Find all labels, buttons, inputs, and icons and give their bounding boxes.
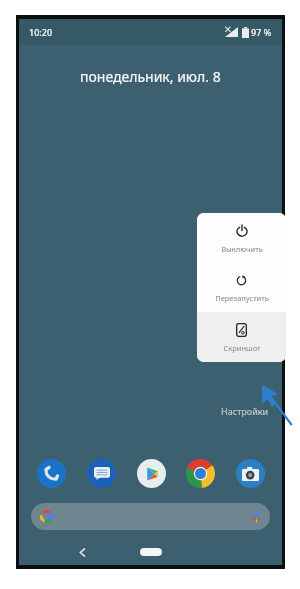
button[interactable]: Restart: [197, 263, 286, 312]
button[interactable]: Messages: [83, 455, 119, 491]
button[interactable]: Phone: [33, 455, 69, 491]
button[interactable]: Back: [71, 541, 93, 563]
staticText: 10:20: [29, 26, 53, 38]
staticText: 97 %: [251, 26, 272, 38]
button[interactable]: Google Search: [31, 503, 270, 530]
other: Power off: [235, 224, 249, 238]
button[interactable]: Camera: [232, 455, 268, 491]
button[interactable]: Screenshot: [197, 312, 286, 362]
staticText: Выключить: [221, 244, 263, 254]
other: Google Search: [40, 510, 53, 523]
button[interactable]: Power off: [197, 213, 286, 263]
other: Pointer: [255, 382, 295, 426]
button[interactable]: Play Store: [133, 455, 169, 491]
other: Screenshot: [236, 323, 247, 337]
other: Restart: [235, 274, 248, 287]
staticText: понедельник, июл. 8: [80, 67, 221, 86]
button[interactable]: понедельник, июл. 8: [19, 67, 282, 86]
staticText: Настройки: [221, 405, 269, 417]
button[interactable]: Настройки: [217, 403, 273, 419]
other: Voice search: [252, 510, 261, 523]
button[interactable]: Home: [134, 544, 168, 560]
staticText: Скриншот: [223, 343, 261, 353]
button[interactable]: Chrome: [182, 455, 218, 491]
staticText: Перезапустить: [215, 293, 269, 303]
